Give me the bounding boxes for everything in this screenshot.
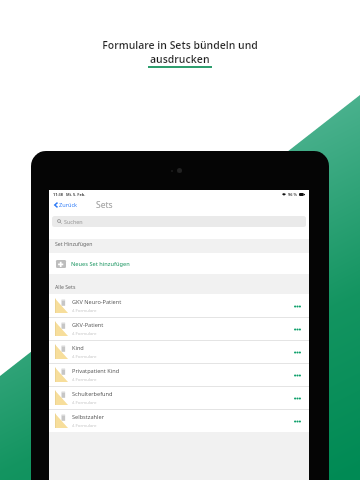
staticText: Set Hinzufügen — [55, 240, 93, 247]
button[interactable]: Selbstzahler — [49, 409, 309, 432]
button[interactable]: Schulterbefund — [49, 386, 309, 409]
button[interactable]: Mehr Optionen — [289, 321, 305, 337]
staticText: Privatpatient Kind — [72, 367, 120, 375]
staticText: 4 Formulare — [72, 330, 97, 336]
staticText: Mi. 5. Feb. — [66, 192, 86, 197]
staticText: 4 Formulare — [72, 422, 97, 428]
staticText: ausdrucken — [150, 52, 210, 66]
button[interactable]: Mehr Optionen — [289, 413, 305, 429]
staticText: Alle Sets — [55, 283, 76, 290]
button[interactable]: GKV-Patient — [49, 317, 309, 340]
staticText: 4 Formulare — [72, 376, 97, 382]
staticText: 4 Formulare — [72, 353, 97, 359]
staticText: GKV Neuro-Patient — [72, 298, 122, 306]
staticText: 11:38 — [53, 192, 63, 197]
button[interactable]: Privatpatient Kind — [49, 363, 309, 386]
button[interactable]: Mehr Optionen — [289, 298, 305, 314]
button[interactable]: Mehr Optionen — [289, 390, 305, 406]
button[interactable]: Neues Set hinzufügen — [49, 253, 309, 274]
staticText: Schulterbefund — [72, 390, 113, 398]
staticText: 96 % — [288, 192, 297, 197]
staticText: Sets — [96, 199, 113, 211]
staticText: Neues Set hinzufügen — [71, 260, 130, 268]
staticText: Suchen — [64, 218, 83, 225]
button[interactable]: Suchen — [52, 216, 306, 227]
button[interactable]: Kind — [49, 340, 309, 363]
button[interactable]: Mehr Optionen — [289, 344, 305, 360]
staticText: Zurück — [59, 201, 78, 209]
staticText: Selbstzahler — [72, 413, 104, 421]
staticText: Formulare in Sets bündeln und — [102, 38, 258, 52]
button[interactable]: GKV Neuro-Patient — [49, 294, 309, 317]
staticText: GKV-Patient — [72, 321, 104, 329]
staticText: Kind — [72, 344, 84, 352]
staticText: 4 Formulare — [72, 399, 97, 405]
button[interactable]: Mehr Optionen — [289, 367, 305, 383]
staticText: 4 Formulare — [72, 307, 97, 313]
button[interactable]: Zurück — [53, 199, 79, 211]
